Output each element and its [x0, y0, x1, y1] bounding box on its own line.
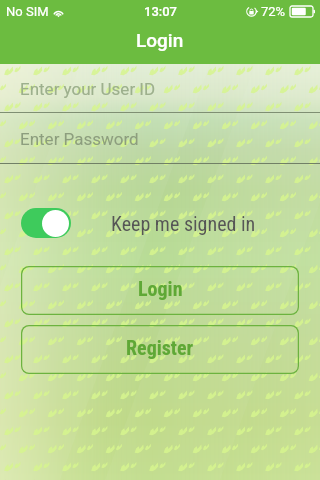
staticText: Login	[138, 277, 183, 300]
button[interactable]: Keep me signed in toggle	[21, 208, 71, 238]
staticText: 72%	[261, 4, 286, 19]
staticText: 13:07	[144, 4, 177, 19]
staticText: Enter Password	[20, 129, 139, 149]
staticText: Enter your User ID	[20, 79, 156, 99]
staticText: No SIM	[6, 4, 49, 19]
button[interactable]: Enter your User ID	[0, 64, 320, 113]
button[interactable]: Login	[21, 266, 299, 315]
button[interactable]: Enter Password	[0, 113, 320, 164]
staticText: Login	[136, 29, 184, 51]
staticText: Keep me signed in	[111, 212, 256, 235]
button[interactable]: Register	[21, 325, 299, 374]
staticText: Register	[126, 336, 194, 359]
